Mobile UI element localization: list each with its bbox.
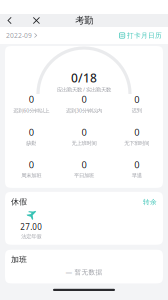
staticText: 转余 — [143, 198, 157, 206]
staticText: 0 — [134, 126, 139, 138]
staticText: 缺勤 — [26, 140, 36, 146]
staticText: 0 — [29, 158, 34, 171]
button[interactable]: 转余 — [143, 197, 157, 207]
staticText: 0 — [81, 158, 86, 171]
staticText: 打卡月日历 — [127, 31, 162, 40]
staticText: 0/18 — [71, 70, 97, 86]
staticText: 无下班时间 — [124, 140, 149, 146]
staticText: 无上班时间 — [71, 140, 96, 146]
staticText: 27.00 — [20, 222, 42, 232]
staticText: 应出勤天数 / 实出勤天数 — [57, 86, 111, 93]
staticText: 2022-09 — [6, 31, 32, 40]
staticText: — 暂无数据 — [65, 268, 102, 276]
staticText: 迟到30分钟以内 — [66, 107, 102, 114]
staticText: 0 — [29, 93, 34, 105]
staticText: 休假 — [11, 197, 27, 207]
staticText: 0 — [29, 126, 34, 138]
staticText: 0 — [134, 158, 139, 171]
staticText: 加班 — [11, 255, 27, 264]
button[interactable]: Close — [28, 14, 45, 27]
staticText: 考勤 — [75, 15, 93, 26]
button[interactable]: 2022-09 — [6, 27, 37, 44]
staticText: 平日加班 — [74, 172, 94, 179]
button[interactable]: 打卡月日历 — [119, 27, 162, 44]
button[interactable]: Back — [2, 14, 17, 27]
staticText: 迟到 — [132, 107, 142, 114]
staticText: 周末加班 — [21, 172, 41, 179]
staticText: 0 — [81, 126, 86, 138]
staticText: 迟到60分钟以上 — [13, 107, 49, 114]
staticText: 0 — [81, 93, 86, 105]
staticText: 早退 — [132, 172, 142, 179]
staticText: 0 — [134, 93, 139, 106]
staticText: 法定年假 — [21, 233, 41, 240]
